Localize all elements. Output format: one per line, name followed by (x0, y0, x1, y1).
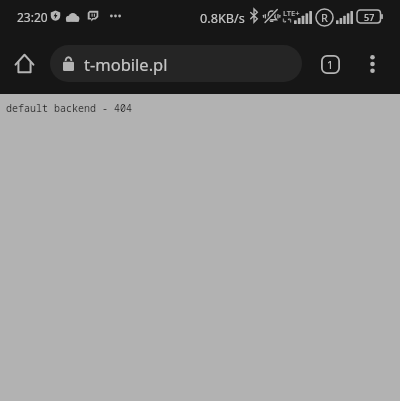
staticText: 1 (327, 57, 334, 72)
staticText: 23:20 (17, 9, 48, 25)
button[interactable]: t-mobile.pl (50, 45, 302, 82)
staticText: default backend - 404 (6, 101, 132, 115)
button[interactable]: More options (358, 50, 386, 78)
button[interactable]: Home (6, 45, 42, 81)
staticText: t-mobile.pl (84, 53, 168, 75)
staticText: 57 (364, 11, 375, 23)
staticText: LTE+ (283, 8, 300, 18)
staticText: R (321, 10, 328, 25)
button[interactable]: Tabs (315, 49, 346, 80)
staticText: 0.8KB/s (200, 9, 245, 26)
